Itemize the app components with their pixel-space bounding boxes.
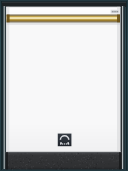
button[interactable]: Forno dishwasher product photo bbox=[0, 0, 128, 171]
